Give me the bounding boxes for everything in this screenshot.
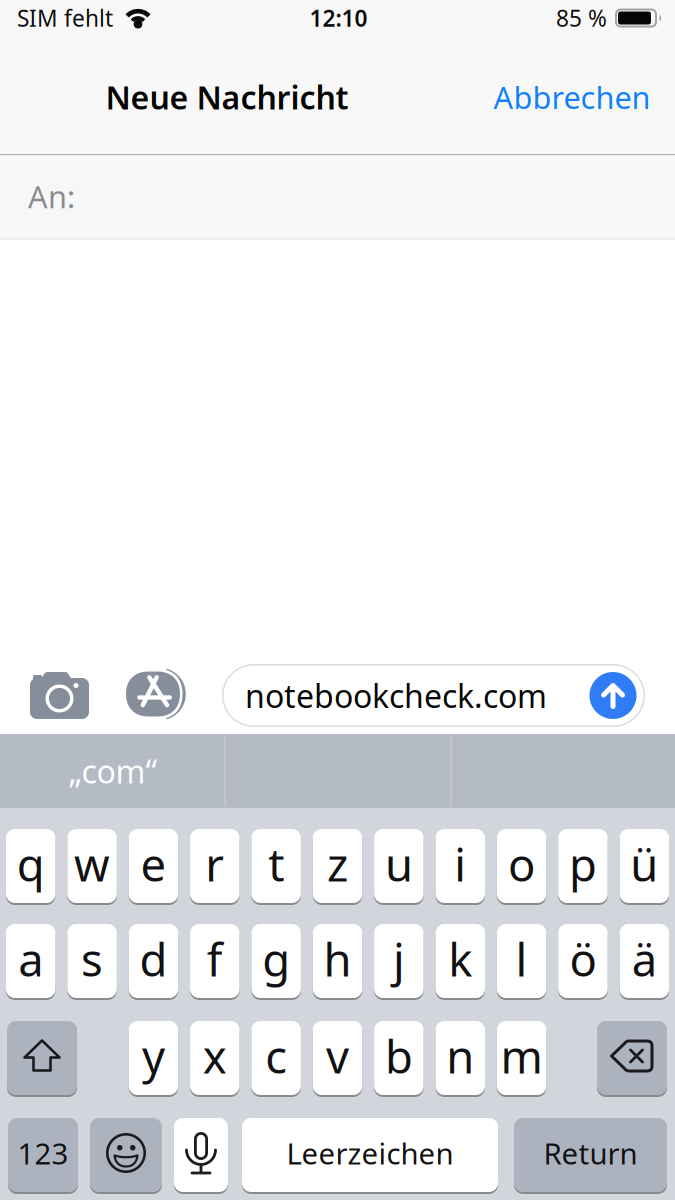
staticText: ö	[569, 929, 596, 989]
staticText: z	[327, 834, 348, 894]
button[interactable]: w	[67, 828, 117, 904]
button[interactable]: x	[190, 1020, 239, 1096]
staticText: q	[17, 834, 45, 894]
button[interactable]: m	[497, 1020, 546, 1096]
button[interactable]: e	[129, 828, 178, 904]
button[interactable]: h	[313, 923, 362, 999]
staticText: k	[448, 929, 472, 989]
button[interactable]: j	[374, 923, 424, 999]
button[interactable]: Diktieren	[174, 1117, 228, 1193]
button[interactable]: d	[129, 923, 178, 999]
staticText: Leerzeichen	[286, 1133, 453, 1172]
staticText: v	[326, 1026, 349, 1086]
staticText: m	[501, 1026, 543, 1086]
staticText: u	[385, 834, 413, 894]
staticText: 12:10	[309, 3, 367, 33]
button[interactable]: i	[435, 828, 485, 904]
staticText: s	[81, 929, 103, 989]
button[interactable]: Leerzeichen	[242, 1117, 498, 1193]
button[interactable]: a	[6, 923, 55, 999]
button[interactable]: An:	[0, 155, 675, 239]
staticText: p	[569, 834, 597, 894]
button[interactable]: Abbrechen	[493, 77, 650, 117]
button[interactable]: k	[435, 923, 485, 999]
staticText: r	[205, 834, 224, 894]
staticText: l	[516, 929, 528, 989]
staticText: 123	[17, 1133, 68, 1172]
button[interactable]: „com“	[0, 734, 225, 808]
staticText: e	[140, 834, 166, 894]
staticText: i	[454, 834, 466, 894]
button[interactable]: q	[6, 828, 55, 904]
staticText: g	[262, 929, 290, 989]
button[interactable]: ö	[558, 923, 608, 999]
button[interactable]: c	[251, 1020, 301, 1096]
staticText: Return	[543, 1133, 637, 1172]
staticText: a	[18, 929, 43, 989]
staticText: An:	[28, 176, 75, 217]
button[interactable]: v	[313, 1020, 362, 1096]
staticText: b	[385, 1026, 413, 1086]
staticText: x	[203, 1026, 227, 1086]
button[interactable]: s	[67, 923, 117, 999]
button[interactable]: b	[374, 1020, 424, 1096]
button[interactable]: f	[190, 923, 239, 999]
button[interactable]: o	[497, 828, 546, 904]
staticText: y	[142, 1026, 165, 1086]
button[interactable]: z	[313, 828, 362, 904]
button[interactable]: r	[190, 828, 239, 904]
button[interactable]: u	[374, 828, 424, 904]
staticText: t	[268, 834, 284, 894]
button[interactable]: Löschen	[597, 1020, 667, 1096]
button[interactable]: Apps	[126, 672, 188, 719]
staticText: d	[139, 929, 167, 989]
button[interactable]: ä	[620, 923, 669, 999]
staticText: h	[323, 929, 351, 989]
button[interactable]: p	[558, 828, 608, 904]
staticText: Neue Nachricht	[105, 76, 348, 118]
button[interactable]: Return	[514, 1117, 667, 1193]
button[interactable]: t	[251, 828, 301, 904]
button[interactable]: Emoji	[90, 1117, 162, 1193]
staticText: j	[393, 929, 405, 989]
button[interactable]: 123	[8, 1117, 78, 1193]
button[interactable]: y	[129, 1020, 178, 1096]
button[interactable]: Umschalt	[7, 1020, 77, 1096]
staticText: notebookcheck.com	[245, 674, 547, 717]
staticText: w	[74, 834, 110, 894]
button[interactable]: ü	[620, 828, 669, 904]
button[interactable]: Kamera	[28, 672, 89, 719]
button[interactable]: l	[497, 923, 546, 999]
staticText: 85 %	[556, 3, 607, 33]
staticText: c	[265, 1026, 287, 1086]
button[interactable]: n	[435, 1020, 485, 1096]
staticText: o	[508, 834, 535, 894]
button[interactable]: g	[251, 923, 301, 999]
staticText: f	[207, 929, 223, 989]
staticText: „com“	[68, 750, 156, 792]
staticText: n	[446, 1026, 474, 1086]
staticText: ä	[632, 929, 657, 989]
staticText: ü	[630, 834, 658, 894]
staticText: Abbrechen	[493, 77, 650, 117]
button[interactable]: Senden	[589, 672, 636, 719]
staticText: SIM fehlt	[17, 3, 113, 33]
